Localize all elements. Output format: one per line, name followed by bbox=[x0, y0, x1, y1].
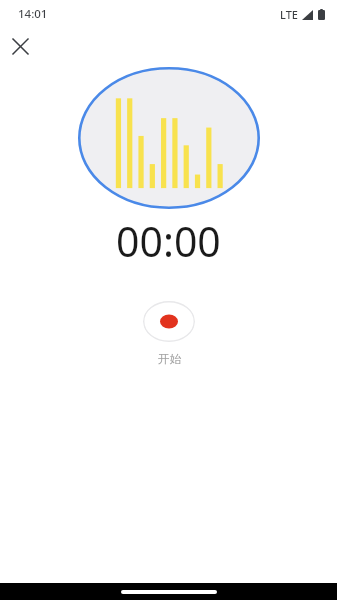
staticText: 开始 bbox=[158, 352, 181, 366]
button[interactable]: Start recording bbox=[143, 301, 195, 342]
staticText: 14:01 bbox=[18, 6, 48, 22]
staticText: LTE bbox=[280, 7, 298, 22]
staticText: 00:00 bbox=[116, 213, 221, 269]
button[interactable]: Close bbox=[6, 32, 34, 60]
